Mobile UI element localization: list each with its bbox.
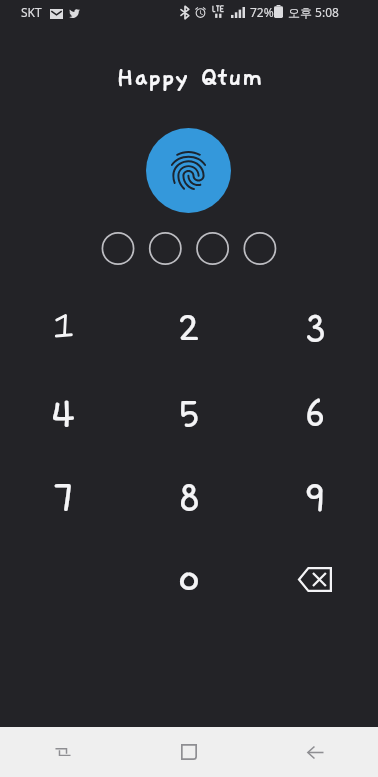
staticText: 4 bbox=[51, 387, 76, 435]
button[interactable]: 7 bbox=[0, 453, 126, 538]
staticText: SKT bbox=[21, 4, 42, 20]
button[interactable]: Backspace bbox=[252, 538, 378, 621]
staticText: 6 bbox=[305, 387, 326, 435]
staticText: 7 bbox=[53, 472, 73, 520]
staticText: Happy Qtum bbox=[116, 63, 263, 92]
staticText: 오후 5:08 bbox=[288, 4, 339, 20]
button[interactable]: 0 bbox=[126, 538, 252, 621]
staticText: 0 bbox=[178, 556, 201, 604]
staticText: 8 bbox=[179, 472, 200, 520]
button[interactable]: 2 bbox=[126, 283, 252, 368]
staticText: 3 bbox=[305, 302, 326, 350]
button[interactable]: 9 bbox=[252, 453, 378, 538]
button[interactable] bbox=[0, 283, 126, 368]
button[interactable]: 3 bbox=[252, 283, 378, 368]
button[interactable]: 6 bbox=[252, 368, 378, 453]
button[interactable]: Home bbox=[126, 727, 252, 777]
staticText: 72% bbox=[250, 4, 274, 20]
staticText: 2 bbox=[178, 302, 201, 350]
staticText: 5 bbox=[179, 387, 200, 435]
button[interactable]: Back bbox=[252, 727, 378, 777]
button[interactable]: 4 bbox=[0, 368, 126, 453]
button[interactable]: 8 bbox=[126, 453, 252, 538]
button[interactable]: Unlock with fingerprint bbox=[146, 128, 231, 213]
staticText: 9 bbox=[305, 472, 325, 520]
button[interactable]: Recent apps bbox=[0, 727, 126, 777]
button[interactable]: 5 bbox=[126, 368, 252, 453]
